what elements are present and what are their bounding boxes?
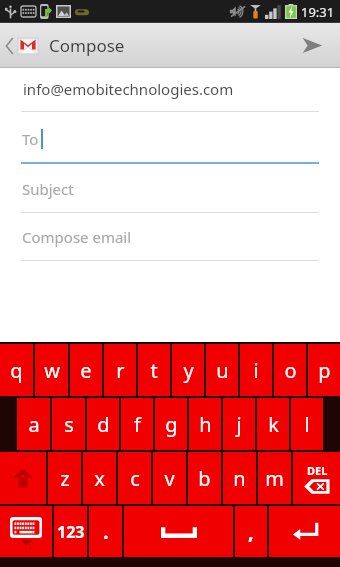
other: Up xyxy=(6,38,14,54)
button[interactable]: , xyxy=(235,506,267,557)
button[interactable]: c xyxy=(118,452,151,504)
staticText: info@emobitechnologies.com xyxy=(23,79,234,99)
button[interactable]: Subject xyxy=(0,164,340,213)
staticText: s xyxy=(64,411,74,438)
staticText: m xyxy=(265,465,284,492)
staticText: x xyxy=(94,465,105,492)
button[interactable]: Enter xyxy=(269,506,340,557)
button[interactable]: Shift xyxy=(0,452,46,504)
button[interactable]: d xyxy=(87,398,119,450)
staticText: r xyxy=(116,357,125,384)
staticText: f xyxy=(134,411,141,438)
button[interactable]: . xyxy=(89,506,122,557)
button[interactable]: f xyxy=(121,398,153,450)
staticText: d xyxy=(97,411,110,438)
button[interactable]: e xyxy=(70,344,102,396)
staticText: k xyxy=(268,411,279,438)
staticText: e xyxy=(80,357,92,384)
button[interactable]: h xyxy=(189,398,221,450)
staticText: u xyxy=(216,357,229,384)
button[interactable]: o xyxy=(274,344,306,396)
button[interactable]: p xyxy=(308,344,340,396)
staticText: Compose email xyxy=(22,227,132,247)
button[interactable]: r xyxy=(104,344,136,396)
staticText: p xyxy=(318,357,331,384)
button[interactable]: i xyxy=(240,344,272,396)
button[interactable]: n xyxy=(223,452,256,504)
staticText: i xyxy=(253,357,259,384)
button[interactable]: a xyxy=(17,398,50,450)
button[interactable]: b xyxy=(188,452,221,504)
button[interactable]: u xyxy=(206,344,238,396)
staticText: b xyxy=(198,465,211,492)
button[interactable]: Delete xyxy=(293,452,340,504)
button[interactable]: w xyxy=(35,344,68,396)
button[interactable]: 123 xyxy=(54,506,87,557)
staticText: o xyxy=(284,357,297,384)
staticText: . xyxy=(103,518,109,545)
staticText: h xyxy=(199,411,212,438)
staticText: n xyxy=(233,465,246,492)
button[interactable]: To xyxy=(0,112,340,164)
staticText: q xyxy=(10,357,23,384)
staticText: To xyxy=(22,129,39,149)
button[interactable]: Compose email xyxy=(0,213,340,261)
staticText: y xyxy=(183,357,194,384)
button[interactable]: q xyxy=(0,344,33,396)
staticText: a xyxy=(28,411,40,438)
button[interactable]: v xyxy=(153,452,186,504)
button[interactable]: Up xyxy=(0,23,133,68)
button[interactable]: Switch keyboard xyxy=(0,506,52,557)
button[interactable]: j xyxy=(223,398,255,450)
staticText: DEL xyxy=(307,463,328,478)
staticText: Compose xyxy=(49,34,125,57)
button[interactable]: l xyxy=(291,398,323,450)
staticText: g xyxy=(165,411,178,438)
staticText: t xyxy=(150,357,158,384)
staticText: 123 xyxy=(57,521,85,543)
staticText: , xyxy=(248,518,254,545)
staticText: j xyxy=(236,411,242,438)
staticText: l xyxy=(304,411,310,438)
staticText: v xyxy=(164,465,175,492)
button[interactable]: s xyxy=(52,398,85,450)
staticText: z xyxy=(60,465,70,492)
button[interactable]: y xyxy=(172,344,204,396)
button[interactable]: Send xyxy=(284,23,340,68)
staticText: Subject xyxy=(22,179,74,199)
button[interactable]: g xyxy=(155,398,187,450)
staticText: 19:31 xyxy=(301,3,335,21)
button[interactable]: z xyxy=(48,452,81,504)
button[interactable]: Space xyxy=(124,506,233,557)
button[interactable]: k xyxy=(257,398,289,450)
button[interactable]: info@emobitechnologies.com xyxy=(0,68,340,112)
staticText: w xyxy=(44,357,60,384)
button[interactable]: t xyxy=(138,344,170,396)
staticText: c xyxy=(130,465,140,492)
button[interactable]: m xyxy=(258,452,291,504)
button[interactable]: x xyxy=(83,452,116,504)
